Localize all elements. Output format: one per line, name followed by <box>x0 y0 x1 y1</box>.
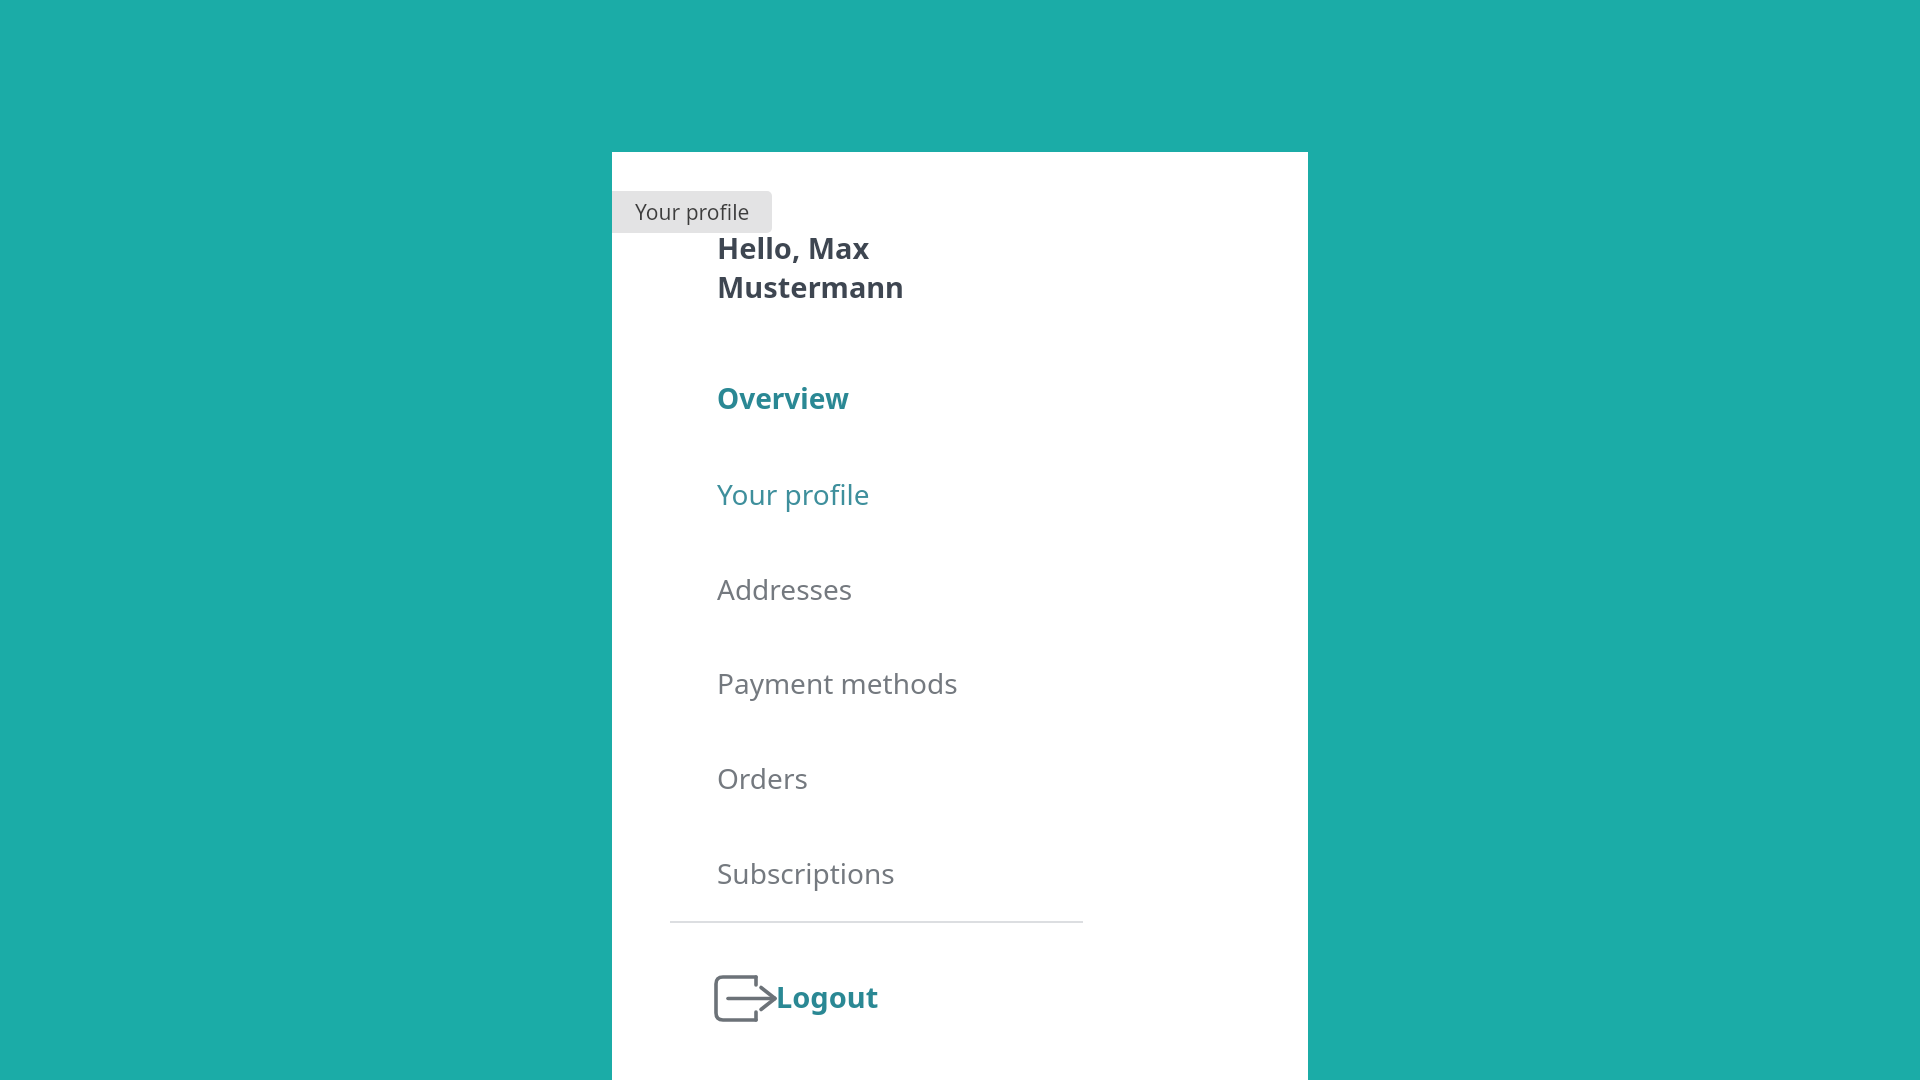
staticText: Addresses <box>717 570 853 608</box>
staticText: Subscriptions <box>717 854 895 892</box>
button[interactable]: Your profile <box>612 458 1308 530</box>
staticText: Payment methods <box>717 664 958 702</box>
button[interactable]: Logout <box>710 965 879 1027</box>
button[interactable]: Payment methods <box>612 647 1308 719</box>
button[interactable]: Addresses <box>612 553 1308 625</box>
staticText: Orders <box>717 759 808 797</box>
staticText: Your profile <box>717 475 870 513</box>
button[interactable]: Your profile <box>612 191 772 233</box>
staticText: Overview <box>717 379 849 417</box>
staticText: Logout <box>776 977 879 1016</box>
button[interactable]: Overview <box>612 362 1308 434</box>
staticText: Your profile <box>635 198 750 227</box>
button[interactable]: Orders <box>612 742 1308 814</box>
staticText: Hello, Max <box>717 228 870 267</box>
button[interactable]: Subscriptions <box>612 837 1308 909</box>
staticText: Mustermann <box>717 267 904 306</box>
other: Logout <box>710 970 768 1022</box>
